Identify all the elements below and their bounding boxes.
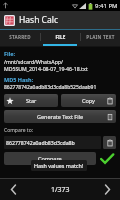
staticText: Star — [26, 97, 37, 104]
staticText: 862778742a0adb83d3cda8b — [6, 139, 75, 146]
staticText: Hash values match! — [34, 162, 84, 169]
button[interactable]: 862778742a0adb83d3cda8b — [4, 136, 101, 149]
staticText: STARRED — [9, 34, 31, 40]
staticText: Hash Calc — [19, 14, 59, 26]
button[interactable]: Previous — [0, 179, 26, 200]
staticText: Copy — [82, 97, 95, 104]
button[interactable]: Copy — [61, 94, 116, 107]
button[interactable]: Next — [94, 179, 120, 200]
staticText: 9:41 PM — [95, 2, 118, 10]
staticText: /mnt/sdcard/WhatsApp/ — [4, 58, 63, 65]
button[interactable]: Star — [4, 94, 58, 107]
staticText: Compare — [38, 155, 62, 162]
other: Copy to clipboard — [106, 97, 114, 105]
staticText: Compare to: — [4, 127, 33, 134]
button[interactable]: STARRED — [0, 30, 40, 44]
other: Generate text file — [106, 113, 114, 121]
staticText: MD5SUM_2014-08-07_19-46-18.txt — [4, 65, 88, 72]
button[interactable]: Compare — [4, 152, 96, 165]
button[interactable]: Generate Text File — [4, 110, 116, 123]
staticText: 1/373 — [51, 185, 70, 195]
staticText: 862778742a0adb83d3cda8b525daab91 — [4, 84, 97, 91]
button[interactable]: Paste from clipboard — [103, 136, 116, 149]
other: Star — [6, 97, 14, 105]
button[interactable]: FILE — [41, 30, 80, 44]
button[interactable]: PLAIN TEXT — [81, 30, 120, 44]
staticText: File: — [4, 50, 16, 57]
staticText: Generate Text File — [37, 113, 84, 120]
staticText: MD5 Hash: — [4, 76, 34, 83]
staticText: PLAIN TEXT — [86, 34, 115, 40]
staticText: FILE — [55, 34, 66, 40]
other: Copy to clipboard — [106, 139, 114, 147]
